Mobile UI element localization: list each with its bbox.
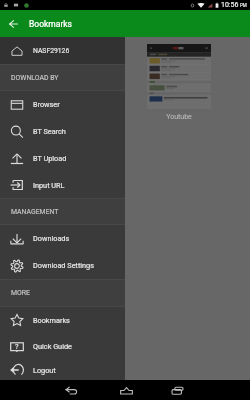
staticText: DOWNLOAD BY: [11, 74, 59, 82]
staticText: Download Settings: [33, 261, 94, 270]
staticText: Bookmarks: [29, 19, 72, 29]
button[interactable]: NASF29126: [0, 37, 125, 64]
button[interactable]: Back: [0, 10, 27, 37]
button[interactable]: Bookmarks: [0, 307, 125, 333]
staticText: MANAGEMENT: [11, 208, 59, 216]
button[interactable]: BT Upload: [0, 145, 125, 172]
staticText: Logout: [33, 366, 56, 375]
staticText: Quick Guide: [33, 342, 72, 351]
staticText: BT Search: [33, 127, 66, 136]
button[interactable]: Input URL: [0, 172, 125, 198]
staticText: PM: [240, 3, 247, 8]
button[interactable]: Download Settings: [0, 252, 125, 279]
staticText: BT Upload: [33, 154, 67, 163]
staticText: Youtube: [166, 113, 192, 121]
button[interactable]: Recent apps: [154, 380, 200, 400]
button[interactable]: [147, 44, 211, 109]
button[interactable]: ?: [0, 333, 125, 360]
staticText: 10:56: [221, 1, 239, 9]
button[interactable]: BT Search: [0, 118, 125, 145]
staticText: NASF29126: [33, 47, 70, 55]
staticText: Bookmarks: [33, 316, 70, 325]
button[interactable]: Logout: [0, 360, 125, 380]
button[interactable]: Home: [103, 380, 149, 400]
staticText: Browser: [33, 100, 60, 109]
button[interactable]: Browser: [0, 91, 125, 118]
staticText: ?: [15, 342, 19, 351]
staticText: Downloads: [33, 234, 70, 243]
button[interactable]: Back: [48, 380, 94, 400]
staticText: Input URL: [33, 181, 65, 190]
staticText: MORE: [11, 289, 30, 297]
button[interactable]: Downloads: [0, 225, 125, 252]
